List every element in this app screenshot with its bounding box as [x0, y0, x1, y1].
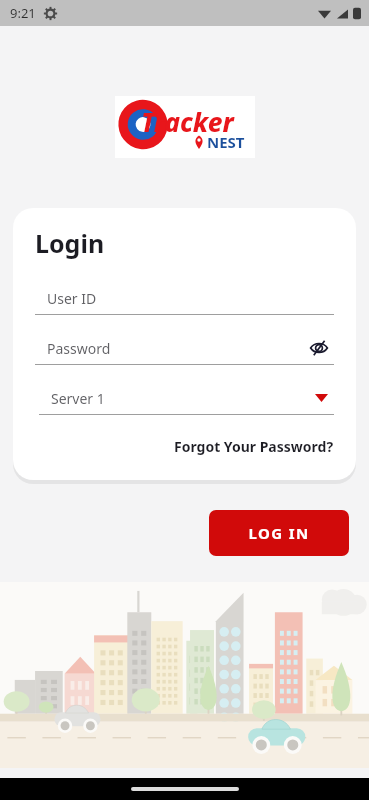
button[interactable]: Show password	[304, 333, 334, 363]
staticText: Tracker	[141, 104, 234, 139]
staticText: Login	[35, 226, 105, 260]
staticText: User ID	[47, 289, 334, 308]
button[interactable]: User ID	[35, 282, 334, 315]
staticText: LOG IN	[248, 523, 310, 543]
staticText: NEST	[207, 132, 245, 152]
button[interactable]: Select server	[308, 385, 334, 411]
button[interactable]: Password	[35, 332, 334, 365]
button[interactable]: Forgot Your Password?	[35, 437, 334, 456]
staticText: Password	[47, 339, 304, 358]
staticText: Forgot Your Password?	[174, 437, 334, 456]
staticText: Server 1	[51, 389, 308, 408]
button[interactable]: LOG IN	[209, 510, 349, 556]
button[interactable]: Server 1	[35, 382, 334, 415]
staticText: 9:21	[10, 4, 36, 22]
